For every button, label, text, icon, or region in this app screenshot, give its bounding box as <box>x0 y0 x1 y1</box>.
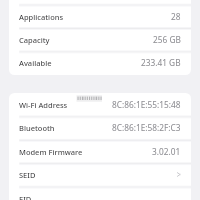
staticText: Available <box>19 58 52 68</box>
staticText: 3.02.01 <box>152 146 181 157</box>
staticText: Capacity <box>19 35 50 45</box>
staticText: Applications <box>19 12 64 22</box>
staticText: SEID <box>19 170 36 180</box>
button[interactable]: Capacity <box>9 28 191 51</box>
staticText: 28 <box>171 11 181 22</box>
button[interactable]: EID <box>9 187 191 200</box>
button[interactable]: Available <box>9 51 191 74</box>
staticText: Wi-Fi Address <box>19 100 68 110</box>
staticText: Bluetooth <box>19 123 55 133</box>
staticText: 8C:86:1E:58:2F:C3 <box>112 122 181 133</box>
button[interactable]: Bluetooth <box>9 116 191 139</box>
staticText: Modem Firmware <box>19 147 83 157</box>
staticText: EID <box>19 194 32 200</box>
button[interactable]: Applications <box>9 5 191 28</box>
button[interactable]: Modem Firmware <box>9 140 191 163</box>
staticText: 233.41 GB <box>141 57 181 68</box>
button[interactable]: SEID <box>9 163 191 186</box>
button[interactable]: Wi-Fi Address <box>9 93 191 116</box>
other: SEID <box>175 171 182 178</box>
staticText: 256 GB <box>153 34 181 45</box>
staticText: 8C:86:1E:55:15:48 <box>112 99 181 110</box>
